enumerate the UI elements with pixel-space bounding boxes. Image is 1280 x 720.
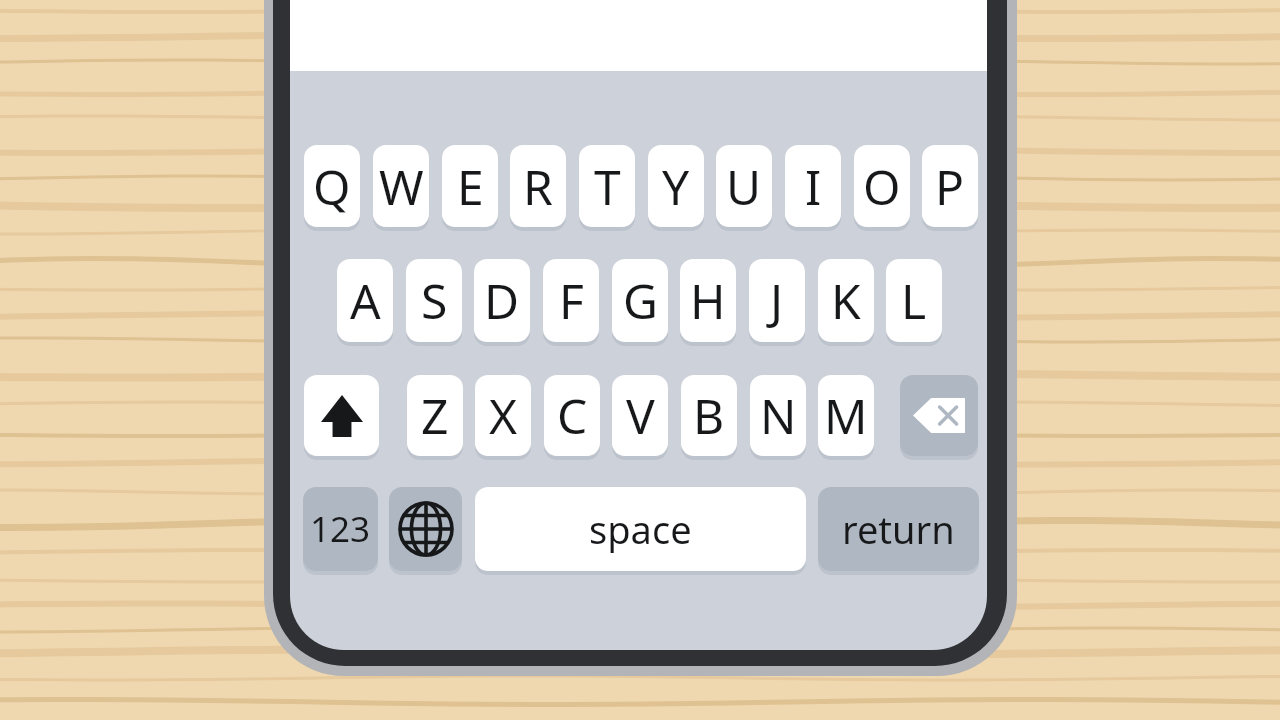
button[interactable]: B [681, 375, 737, 456]
button[interactable]: O [854, 145, 910, 227]
button[interactable]: Z [407, 375, 463, 456]
button[interactable]: P [922, 145, 978, 227]
staticText: O [863, 154, 901, 219]
button[interactable]: R [510, 145, 566, 227]
button[interactable]: M [818, 375, 874, 456]
button[interactable]: V [612, 375, 668, 456]
staticText: V [626, 383, 655, 448]
button[interactable]: C [544, 375, 600, 456]
button[interactable]: N [750, 375, 806, 456]
staticText: I [805, 154, 822, 219]
staticText: T [594, 154, 621, 219]
staticText: return [842, 503, 955, 555]
button[interactable]: E [442, 145, 498, 227]
button[interactable]: J [749, 259, 805, 342]
button[interactable]: K [818, 259, 874, 342]
staticText: B [693, 383, 725, 448]
button[interactable]: H [680, 259, 736, 342]
staticText: K [831, 268, 861, 333]
staticText: U [726, 154, 762, 219]
button[interactable] [389, 487, 462, 571]
button[interactable]: 123 [303, 487, 378, 571]
staticText: J [770, 268, 784, 333]
staticText: F [559, 268, 584, 333]
staticText: 123 [310, 505, 371, 553]
button[interactable]: Y [648, 145, 704, 227]
staticText: G [623, 268, 658, 333]
button[interactable]: F [543, 259, 599, 342]
staticText: L [901, 268, 927, 333]
button[interactable]: L [886, 259, 942, 342]
staticText: A [350, 268, 381, 333]
staticText: E [457, 154, 484, 219]
button[interactable]: A [337, 259, 393, 342]
staticText: space [589, 503, 692, 555]
button[interactable]: Q [304, 145, 360, 227]
button[interactable] [900, 375, 978, 456]
button[interactable]: X [475, 375, 531, 456]
staticText: M [824, 383, 868, 448]
button[interactable]: T [579, 145, 635, 227]
button[interactable]: W [373, 145, 429, 227]
button[interactable]: U [716, 145, 772, 227]
staticText: Q [313, 154, 351, 219]
staticText: Y [662, 154, 690, 219]
button[interactable]: D [474, 259, 530, 342]
staticText: X [489, 383, 518, 448]
staticText: H [690, 268, 726, 333]
staticText: R [523, 154, 553, 219]
button[interactable]: return [818, 487, 979, 571]
staticText: D [484, 268, 520, 333]
staticText: C [557, 383, 588, 448]
staticText: S [421, 268, 448, 333]
staticText: P [935, 154, 965, 219]
button[interactable]: S [406, 259, 462, 342]
button[interactable]: I [785, 145, 841, 227]
staticText: W [379, 154, 424, 219]
staticText: Z [421, 383, 449, 448]
button[interactable] [304, 375, 379, 456]
button[interactable]: space [475, 487, 806, 571]
button[interactable]: G [612, 259, 668, 342]
staticText: N [760, 383, 797, 448]
